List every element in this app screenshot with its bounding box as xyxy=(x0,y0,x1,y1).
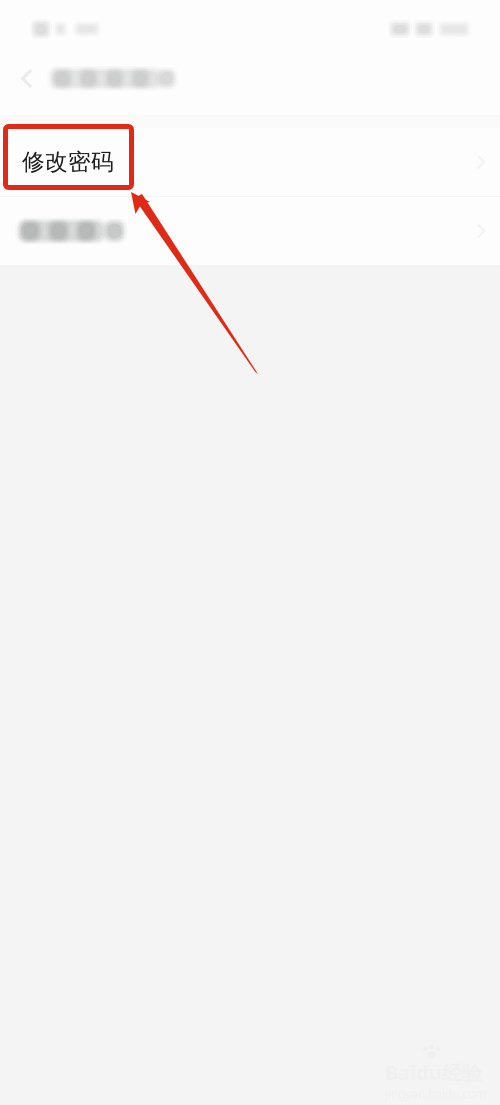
button[interactable] xyxy=(0,197,500,265)
staticText: 修改密码 xyxy=(22,148,114,176)
button[interactable]: 修改密码 xyxy=(0,128,500,196)
button[interactable]: Back xyxy=(12,55,42,101)
